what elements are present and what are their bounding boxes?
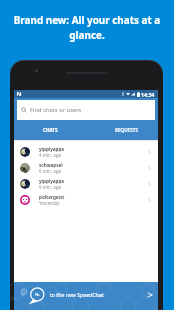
staticText: 4 min. ago	[39, 152, 62, 158]
staticText: yippiyappa	[39, 178, 65, 184]
button[interactable]: SpeedChat	[14, 282, 158, 310]
staticText: schwapsel	[39, 162, 63, 168]
staticText: Yesterday	[39, 200, 60, 206]
button[interactable]: poltergeist	[14, 192, 158, 208]
staticText: to the new SpeedChat	[50, 291, 104, 298]
staticText: 14:34	[141, 91, 155, 98]
button[interactable]: REQUESTS	[86, 122, 158, 140]
staticText: CHATS	[43, 127, 58, 133]
button[interactable]: Find chats or users	[17, 100, 155, 120]
button[interactable]: schwapsel	[14, 160, 158, 176]
other: SpeedChat	[29, 288, 45, 304]
staticText: Find chats or users	[30, 106, 82, 114]
staticText: yippiyappa	[39, 146, 65, 152]
button[interactable]: CHATS	[14, 122, 86, 140]
staticText: 9 min. ago	[39, 184, 62, 190]
button[interactable]: yippiyappa	[14, 176, 158, 192]
staticText: 6 min. ago	[39, 168, 62, 174]
staticText: REQUESTS	[115, 127, 138, 133]
staticText: poltergeist	[39, 194, 65, 200]
staticText: Brand new: All your chats at a glance.	[7, 13, 167, 41]
button[interactable]: yippiyappa	[14, 144, 158, 160]
